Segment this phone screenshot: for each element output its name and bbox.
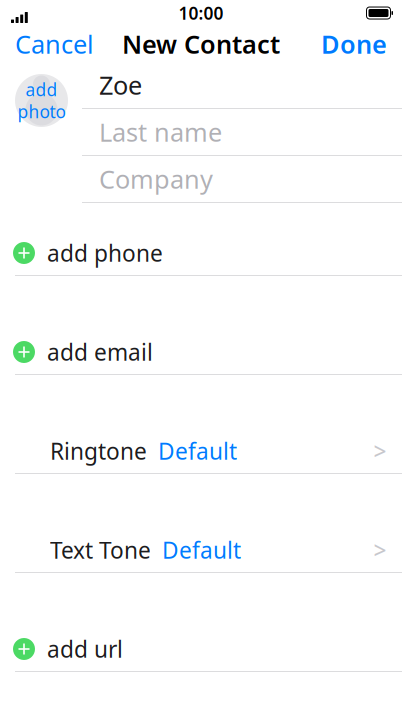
button[interactable]: Ringtone — [0, 429, 402, 474]
staticText: Default — [162, 535, 241, 565]
staticText: Zoe — [99, 68, 142, 102]
staticText: Ringtone — [50, 436, 147, 466]
staticText: > — [373, 436, 386, 466]
staticText: Last name — [99, 115, 222, 149]
staticText: Done — [321, 27, 387, 61]
button[interactable]: Add photo — [15, 74, 68, 127]
staticText: add url — [47, 634, 123, 664]
staticText: add phone — [47, 238, 163, 268]
staticText: photo — [17, 100, 65, 123]
staticText: Default — [158, 436, 237, 466]
button[interactable]: add url — [0, 627, 402, 672]
button[interactable]: add phone — [0, 231, 402, 276]
staticText: New Contact — [122, 27, 280, 61]
button[interactable]: add email — [0, 330, 402, 375]
staticText: Company — [99, 162, 213, 196]
button[interactable]: Cancel — [0, 26, 109, 62]
button[interactable]: Done — [306, 26, 402, 62]
staticText: 10:00 — [178, 1, 223, 24]
staticText: > — [373, 535, 386, 565]
button[interactable]: Last name — [82, 109, 402, 156]
button[interactable]: Company — [82, 156, 402, 203]
staticText: add email — [47, 337, 153, 367]
button[interactable]: Zoe — [82, 62, 402, 109]
staticText: Cancel — [15, 27, 94, 61]
staticText: add — [25, 78, 57, 101]
staticText: Text Tone — [50, 535, 151, 565]
button[interactable]: Text Tone — [0, 528, 402, 573]
